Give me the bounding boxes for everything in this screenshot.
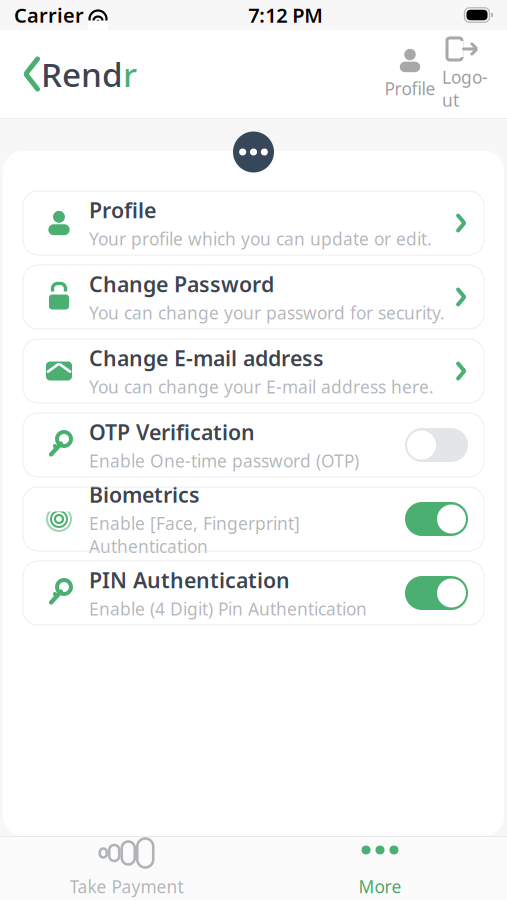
staticText: Enable One-time password (OTP)	[89, 449, 359, 472]
button[interactable]: Change E-mail address	[23, 339, 484, 403]
button[interactable]: Logout	[437, 36, 493, 111]
staticText: Logout	[442, 65, 488, 111]
staticText: Carrier	[14, 2, 84, 28]
staticText: Enable (4 Digit) Pin Authentication	[89, 597, 367, 620]
button[interactable]: Take Payment	[0, 836, 253, 900]
button[interactable]: PIN Authentication	[23, 561, 484, 625]
staticText: Your profile which you can update or edi…	[89, 227, 432, 250]
staticText: 7:12 PM	[248, 2, 323, 28]
button[interactable]: More options	[231, 130, 275, 174]
button[interactable]: Biometrics	[23, 487, 484, 551]
button[interactable]: Rend	[0, 44, 138, 104]
staticText: You can change your password for securit…	[89, 301, 445, 324]
staticText: Take Payment	[69, 875, 183, 898]
button[interactable]: Profile	[23, 191, 484, 255]
staticText: Profile	[384, 77, 435, 100]
staticText: Enable [Face, Fingerprint] Authenticatio…	[89, 512, 300, 558]
button[interactable]: Profile	[383, 48, 437, 100]
staticText: r	[123, 52, 137, 96]
staticText: PIN Authentication	[89, 566, 290, 594]
button[interactable]: Change Password	[23, 265, 484, 329]
staticText: OTP Verification	[89, 418, 255, 446]
staticText: More	[358, 875, 401, 898]
staticText: Rend	[41, 52, 123, 96]
staticText: Profile	[89, 196, 156, 224]
button[interactable]: OTP Verification	[23, 413, 484, 477]
button[interactable]: More	[253, 836, 507, 900]
staticText: You can change your E-mail address here.	[89, 375, 434, 398]
staticText: Biometrics	[89, 480, 200, 509]
staticText: Change Password	[89, 270, 274, 298]
staticText: Change E-mail address	[89, 344, 324, 372]
